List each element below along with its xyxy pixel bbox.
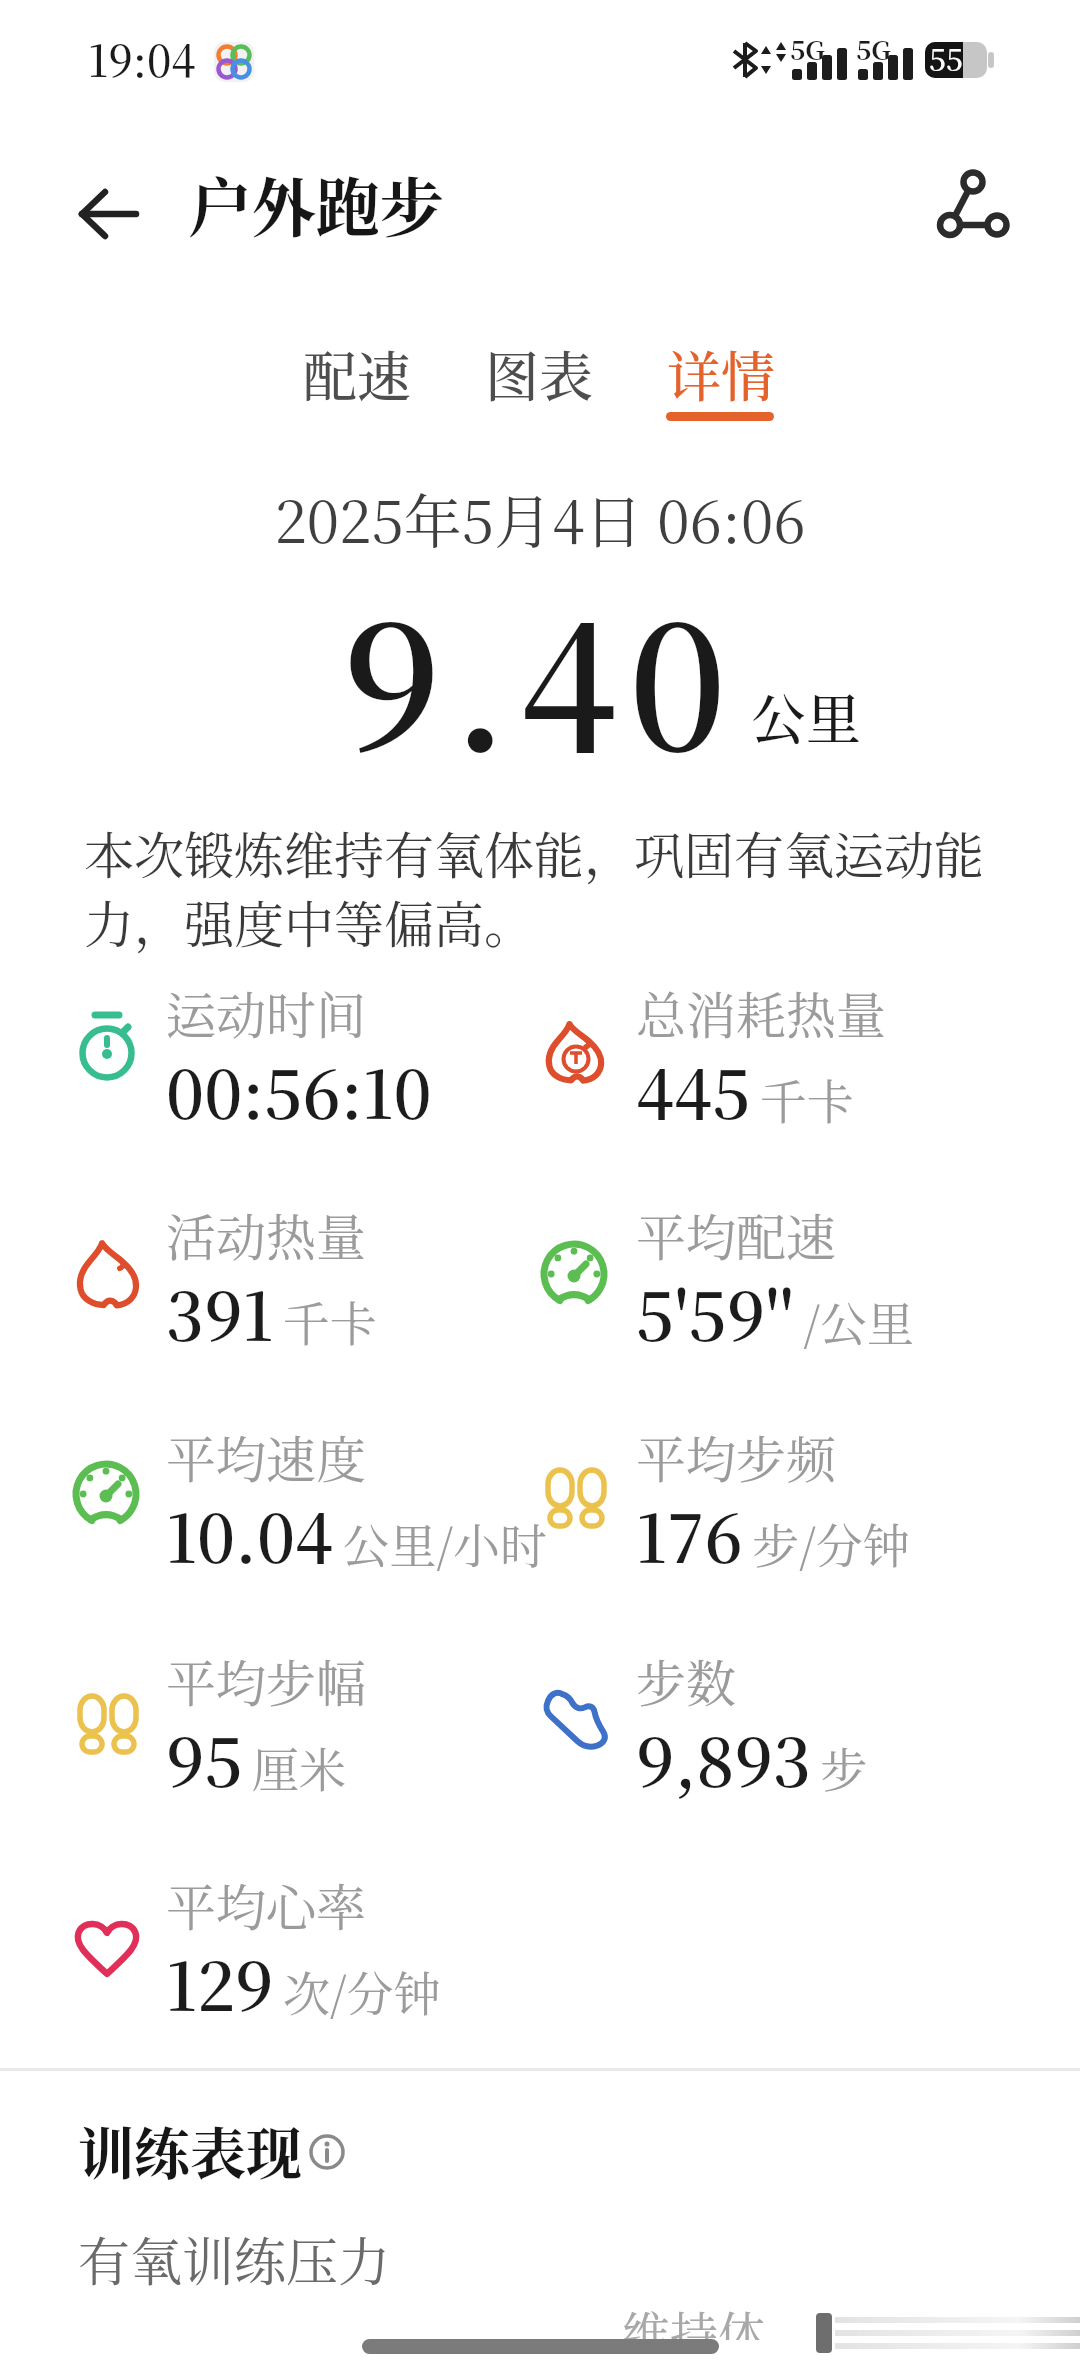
button[interactable]: [645, 330, 800, 432]
staticText: 公里: [751, 676, 862, 755]
staticText: 5G: [790, 30, 825, 67]
staticText: 10.04 公里/小时: [166, 1487, 548, 1582]
staticText: 户外跑步: [188, 157, 444, 249]
staticText: 有氧训练压力: [78, 2221, 391, 2296]
staticText: 391 千卡: [166, 1265, 377, 1360]
staticText: 平均步幅: [166, 1644, 366, 1716]
staticText: 平均速度: [166, 1420, 366, 1492]
staticText: 95 厘米: [166, 1711, 347, 1806]
staticText: 平均配速: [636, 1198, 836, 1270]
staticText: 维持体: [622, 2297, 767, 2366]
staticText: 5G: [856, 30, 891, 67]
staticText: 445 千卡: [636, 1043, 854, 1138]
staticText: 训练表现: [78, 2110, 302, 2190]
staticText: 5'59'' /公里: [636, 1265, 914, 1360]
button[interactable]: [60, 168, 160, 260]
staticText: 129 次/分钟: [166, 1935, 441, 2030]
staticText: 176 步/分钟: [636, 1487, 910, 1582]
staticText: 本次锻炼维持有氧体能，巩固有氧运动能力，强度中等偏高。: [84, 816, 1014, 957]
staticText: 平均步频: [636, 1420, 836, 1492]
staticText: 活动热量: [166, 1198, 366, 1270]
staticText: 运动时间: [166, 976, 366, 1048]
staticText: 总消耗热量: [636, 976, 886, 1048]
staticText: 配速: [303, 335, 411, 413]
staticText: 19:04: [88, 28, 196, 90]
staticText: 2025年5月4日 06:06: [0, 476, 1080, 559]
staticText: 步数: [636, 1644, 736, 1716]
staticText: 9.40: [0, 554, 1080, 798]
staticText: 平均心率: [166, 1868, 366, 1940]
button[interactable]: [305, 2130, 351, 2176]
staticText: 55: [929, 36, 964, 79]
staticText: 9,893 步: [636, 1711, 868, 1806]
staticText: 00:56:10: [166, 1043, 432, 1138]
button[interactable]: [462, 330, 617, 432]
button[interactable]: [280, 330, 435, 432]
button[interactable]: [915, 158, 1025, 268]
staticText: 详情: [667, 335, 775, 413]
staticText: 图表: [485, 335, 593, 413]
